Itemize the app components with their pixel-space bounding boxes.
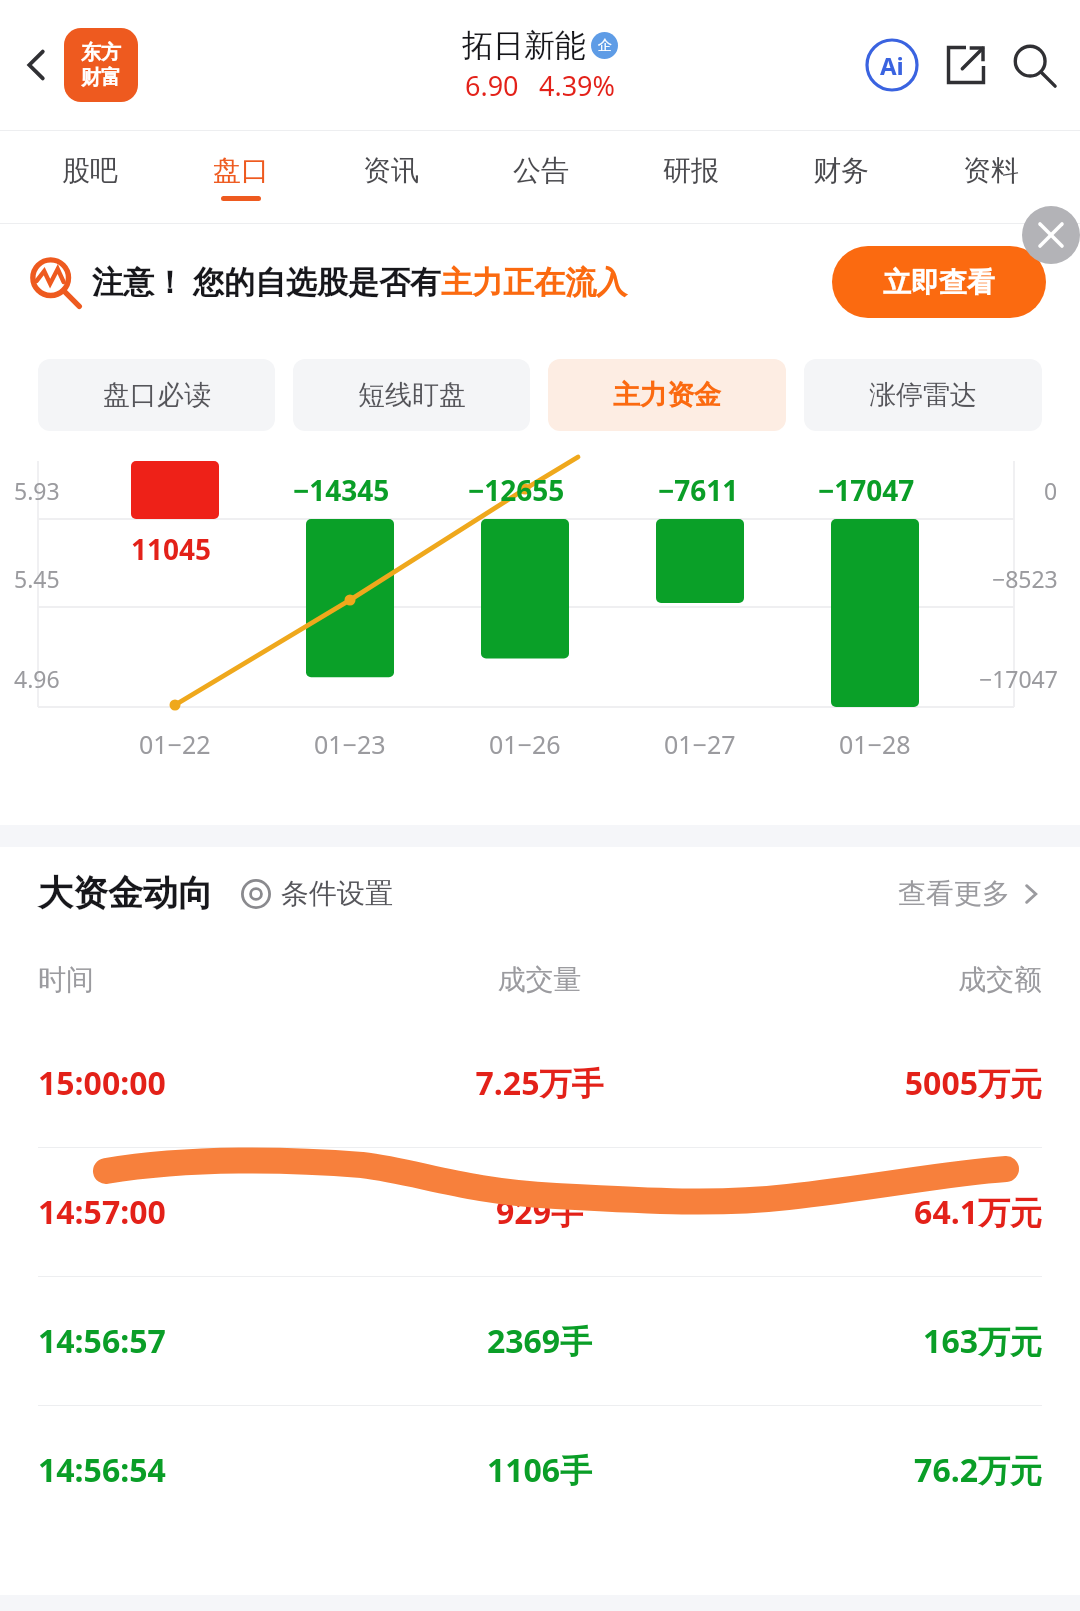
staticText: 0	[1044, 475, 1058, 506]
button[interactable]: 注意！	[28, 223, 1080, 341]
staticText: 短线盯盘	[358, 378, 466, 412]
staticText: 76.2万元	[707, 1448, 1042, 1492]
staticText: 您的自选股是否有	[193, 263, 441, 302]
staticText: 条件设置	[281, 876, 393, 911]
staticText: 财富	[81, 65, 121, 90]
staticText: 资料	[963, 153, 1019, 188]
button[interactable]: Search	[1004, 35, 1064, 95]
staticText: 1106手	[372, 1448, 707, 1492]
button[interactable]: East Money home	[64, 28, 138, 102]
button[interactable]: 财务	[766, 131, 916, 223]
staticText: 涨停雷达	[869, 378, 977, 412]
button[interactable]: 14:56:57	[38, 1277, 1042, 1405]
staticText: 注意！	[92, 263, 185, 302]
staticText: 01−23	[314, 727, 386, 761]
staticText: 14:57:00	[38, 1190, 372, 1234]
staticText: 2369手	[372, 1319, 707, 1363]
staticText: 5.45	[14, 563, 60, 594]
staticText: 企	[598, 37, 612, 55]
staticText: 股吧	[62, 153, 118, 188]
button[interactable]: 公告	[466, 131, 616, 223]
staticText: −12655	[468, 471, 565, 509]
staticText: 4.39%	[539, 67, 616, 104]
staticText: 立即查看	[883, 265, 995, 300]
button[interactable]: 14:56:54	[38, 1406, 1042, 1534]
staticText: 14:56:54	[38, 1448, 372, 1492]
staticText: 查看更多	[898, 876, 1010, 911]
staticText: 成交额	[707, 962, 1042, 997]
staticText: 4.96	[14, 663, 60, 694]
staticText: 7.25万手	[372, 1061, 707, 1105]
staticText: 929手	[372, 1190, 707, 1234]
staticText: 成交量	[372, 962, 707, 997]
staticText: 盘口必读	[103, 378, 211, 412]
staticText: 时间	[38, 962, 372, 997]
staticText: 163万元	[707, 1319, 1042, 1363]
staticText: 01−22	[139, 727, 211, 761]
button[interactable]: Close ad	[1022, 206, 1080, 264]
staticText: −8523	[992, 563, 1058, 594]
staticText: 6.90	[465, 67, 519, 104]
staticText: 01−28	[839, 727, 911, 761]
staticText: 15:00:00	[38, 1061, 372, 1105]
button[interactable]: 研报	[616, 131, 766, 223]
staticText: 大资金动向	[38, 871, 213, 915]
button[interactable]: 资讯	[316, 131, 466, 223]
staticText: −14345	[293, 471, 390, 509]
staticText: 11045	[131, 530, 212, 568]
staticText: 64.1万元	[707, 1190, 1042, 1234]
button[interactable]: Back	[4, 32, 70, 98]
staticText: 东方	[81, 40, 121, 65]
staticText: 主力资金	[613, 378, 721, 412]
staticText: 财务	[813, 153, 869, 188]
staticText: 01−27	[664, 727, 736, 761]
button[interactable]: 股吧	[14, 131, 165, 223]
staticText: 主力正在流入	[441, 263, 627, 302]
staticText: 盘口	[213, 153, 269, 188]
button[interactable]: 立即查看	[832, 246, 1046, 318]
button[interactable]: 条件设置	[239, 876, 393, 911]
button[interactable]: 14:57:00	[38, 1148, 1042, 1276]
staticText: 5.93	[14, 475, 60, 506]
button[interactable]: 资料	[916, 131, 1066, 223]
button[interactable]: AI assistant	[862, 35, 922, 95]
button[interactable]: Share	[936, 35, 996, 95]
button[interactable]: 盘口	[165, 131, 316, 223]
staticText: 01−26	[489, 727, 561, 761]
staticText: 拓日新能	[462, 26, 586, 65]
staticText: 公告	[513, 153, 569, 188]
button[interactable]: 涨停雷达	[804, 359, 1042, 431]
button[interactable]: 短线盯盘	[293, 359, 530, 431]
staticText: 研报	[663, 153, 719, 188]
button[interactable]: 盘口必读	[38, 359, 275, 431]
staticText: −17047	[979, 663, 1058, 694]
staticText: −17047	[818, 471, 915, 509]
staticText: Ai	[880, 49, 904, 82]
staticText: −7611	[658, 471, 739, 509]
button[interactable]: 主力资金	[548, 359, 786, 431]
button[interactable]: 查看更多	[898, 876, 1042, 911]
button[interactable]: 15:00:00	[38, 1019, 1042, 1147]
staticText: 5005万元	[707, 1061, 1042, 1105]
staticText: 14:56:57	[38, 1319, 372, 1363]
staticText: 资讯	[363, 153, 419, 188]
